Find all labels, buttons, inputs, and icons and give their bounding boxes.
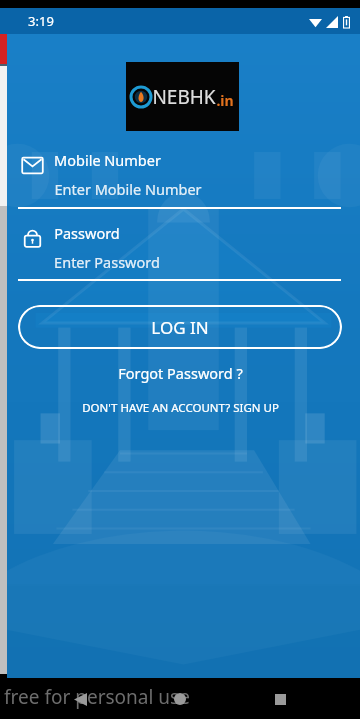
button[interactable]: Forgot Password ?	[0, 362, 360, 384]
button[interactable]: DON'T HAVE AN ACCOUNT? SIGN UP	[0, 399, 360, 417]
button[interactable]: Home	[160, 679, 200, 719]
staticText: NEBHK	[152, 84, 216, 110]
staticText: DON'T HAVE AN ACCOUNT? SIGN UP	[82, 400, 279, 416]
staticText: LOG IN	[151, 316, 209, 339]
staticText: .in	[216, 91, 234, 110]
button[interactable]: Password	[0, 223, 360, 272]
staticText: Password	[54, 223, 120, 243]
staticText: 3:19	[28, 12, 54, 30]
staticText: Enter Password	[54, 252, 160, 272]
staticText: Mobile Number	[54, 150, 161, 170]
staticText: Enter Mobile Number	[54, 179, 202, 199]
button[interactable]: Back	[60, 679, 100, 719]
staticText: Forgot Password ?	[118, 363, 243, 383]
staticText: free for personal use	[4, 684, 190, 710]
button[interactable]: Recent apps	[260, 679, 300, 719]
button[interactable]: LOG IN	[18, 305, 342, 349]
button[interactable]: Mobile Number	[0, 150, 360, 199]
